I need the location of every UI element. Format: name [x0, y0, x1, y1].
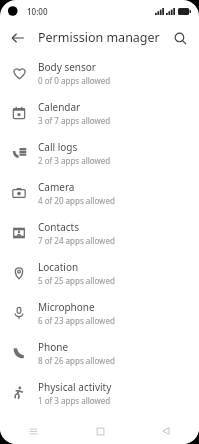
staticText: 8 of 26 apps allowed: [38, 355, 115, 366]
button[interactable]: Body sensor: [0, 53, 199, 93]
button[interactable]: Search: [167, 25, 193, 51]
staticText: Contacts: [38, 220, 79, 234]
staticText: 2 of 3 apps allowed: [38, 155, 111, 166]
button[interactable]: Back: [5, 25, 31, 51]
button[interactable]: Phone: [0, 333, 199, 373]
button[interactable]: Camera: [0, 173, 199, 213]
staticText: 4 of 20 apps allowed: [38, 195, 115, 206]
button[interactable]: Location: [0, 253, 199, 293]
button[interactable]: Calendar: [0, 93, 199, 133]
staticText: Calendar: [38, 100, 81, 114]
button[interactable]: Back: [133, 418, 199, 444]
staticText: 5 of 25 apps allowed: [38, 275, 115, 286]
staticText: Location: [38, 260, 79, 274]
staticText: 7 of 24 apps allowed: [38, 235, 115, 246]
button[interactable]: Recent apps: [0, 418, 67, 444]
staticText: Physical activity: [38, 380, 112, 394]
staticText: Body sensor: [38, 60, 96, 74]
button[interactable]: Call logs: [0, 133, 199, 173]
staticText: Microphone: [38, 300, 95, 314]
staticText: 0 of 0 apps allowed: [38, 75, 111, 86]
button[interactable]: Home: [67, 418, 133, 444]
staticText: 10:00: [27, 6, 48, 17]
staticText: 1 of 3 apps allowed: [38, 395, 111, 406]
staticText: Phone: [38, 340, 69, 354]
staticText: Permission manager: [38, 29, 160, 46]
button[interactable]: Physical activity: [0, 373, 199, 413]
button[interactable]: Microphone: [0, 293, 199, 333]
button[interactable]: Contacts: [0, 213, 199, 253]
staticText: Camera: [38, 180, 75, 194]
staticText: Call logs: [38, 140, 78, 154]
staticText: 3 of 7 apps allowed: [38, 115, 111, 126]
staticText: 6 of 23 apps allowed: [38, 315, 115, 326]
